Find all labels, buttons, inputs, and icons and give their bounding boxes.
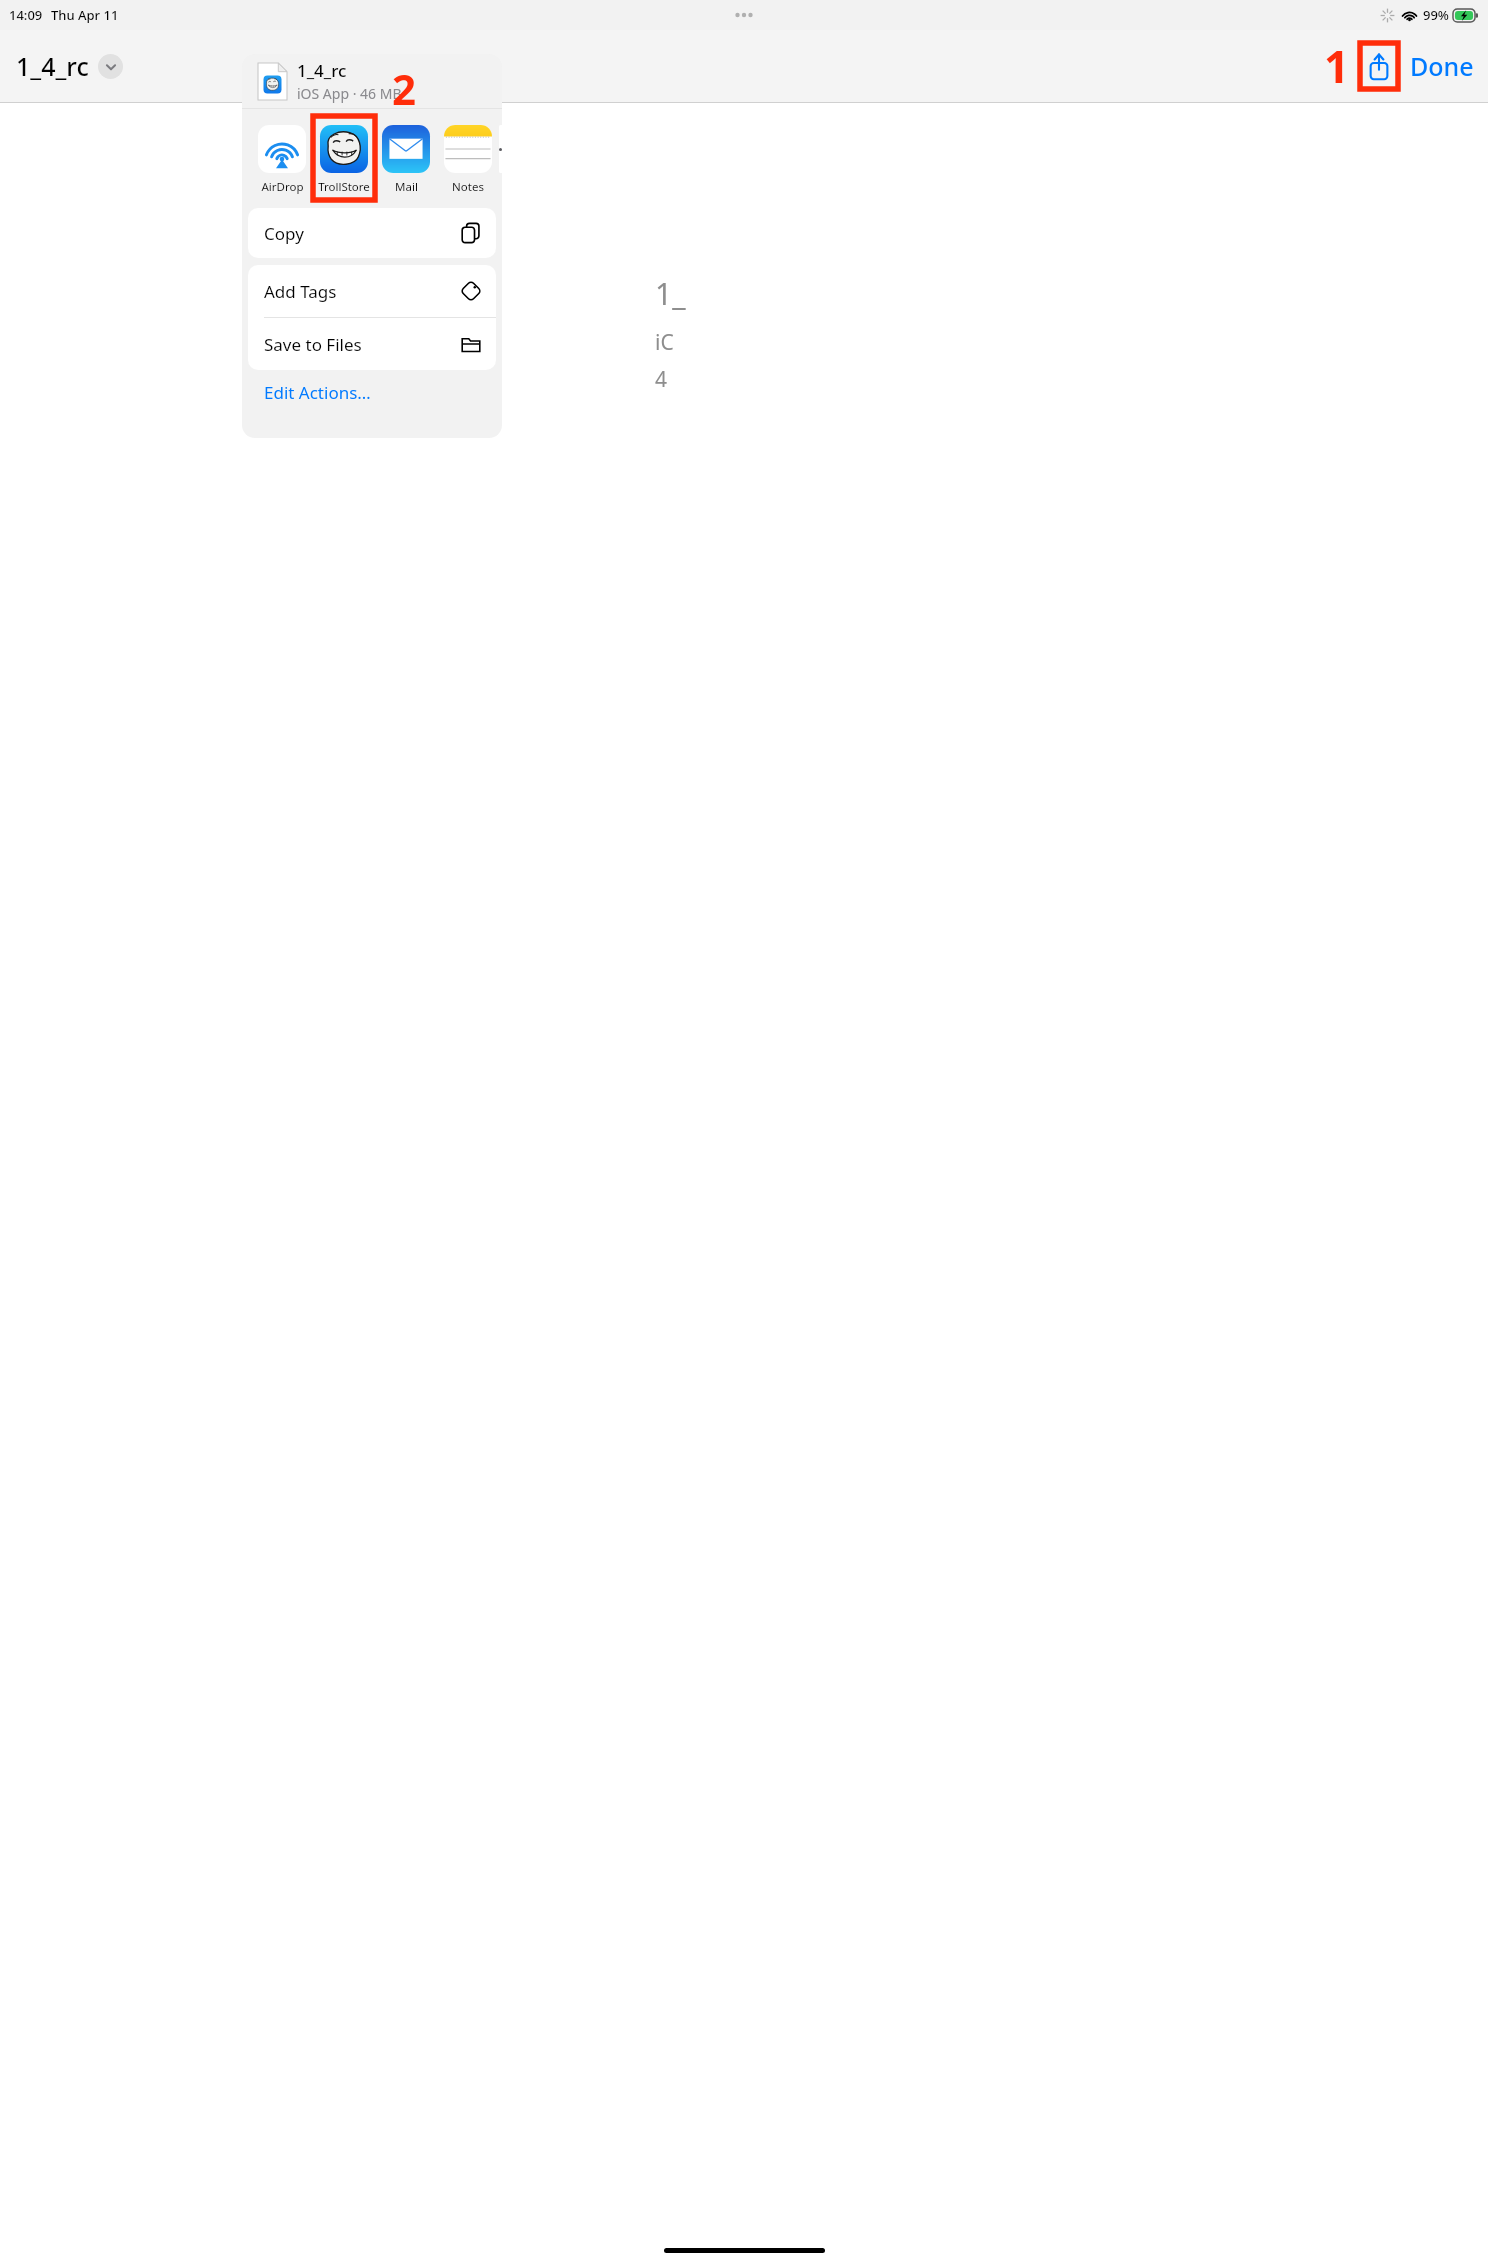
staticText: iC	[655, 328, 674, 357]
button[interactable]: TrollStore	[313, 116, 375, 202]
button[interactable]: Done	[1410, 49, 1474, 83]
staticText: Notes	[452, 179, 484, 195]
staticText: iOS App · 46 MB	[297, 84, 402, 103]
staticText: 99%	[1423, 6, 1449, 24]
button[interactable]	[499, 125, 502, 173]
staticText: Edit Actions…	[264, 381, 371, 404]
button[interactable]: AirDrop	[251, 116, 313, 202]
staticText: 1	[1324, 36, 1350, 96]
staticText: TrollStore	[318, 179, 370, 195]
staticText: 1_	[655, 273, 686, 314]
staticText: Mail	[395, 179, 418, 195]
staticText: Thu Apr 11	[51, 6, 119, 24]
button[interactable]: Mail	[375, 116, 437, 202]
button[interactable]: Add Tags	[248, 265, 496, 317]
staticText: 1_4_rc	[16, 49, 89, 83]
button[interactable]: Edit Actions…	[264, 381, 371, 404]
button[interactable]: 1_4_rc	[16, 49, 123, 83]
button[interactable]: Copy	[248, 208, 496, 258]
button[interactable]: Save to Files	[248, 318, 496, 370]
staticText: AirDrop	[261, 179, 304, 195]
staticText: Done	[1410, 49, 1474, 83]
staticText: Add Tags	[264, 280, 337, 303]
staticText: Save to Files	[264, 333, 362, 356]
staticText: 14:09	[9, 6, 43, 24]
staticText: Copy	[264, 222, 304, 245]
staticText: 1_4_rc	[297, 59, 347, 82]
staticText: 2	[392, 60, 417, 114]
staticText: 4	[655, 365, 668, 394]
button[interactable]: 1_4_rc	[258, 59, 402, 103]
button[interactable]: Share	[1360, 43, 1398, 89]
button[interactable]: Notes	[437, 116, 499, 202]
